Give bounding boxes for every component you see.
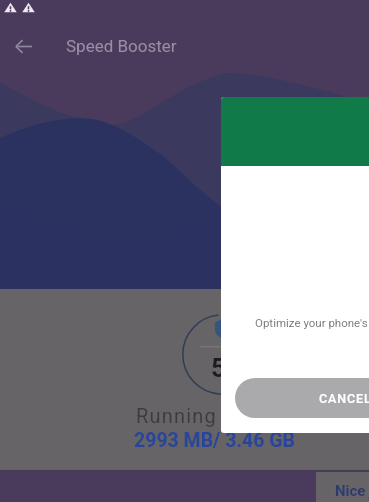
staticText: CANCEL [319,391,369,406]
staticText: Optimize your phone's performance [255,316,369,329]
staticText: 2993 MB/ 3.46 GB [134,429,295,452]
button[interactable]: Back [0,23,46,69]
button[interactable]: CANCEL [235,378,369,418]
staticText: Nice job [335,482,369,500]
staticText: 56 [211,353,241,383]
staticText: Speed Booster [66,36,177,56]
staticText: Running Apps [136,404,274,427]
